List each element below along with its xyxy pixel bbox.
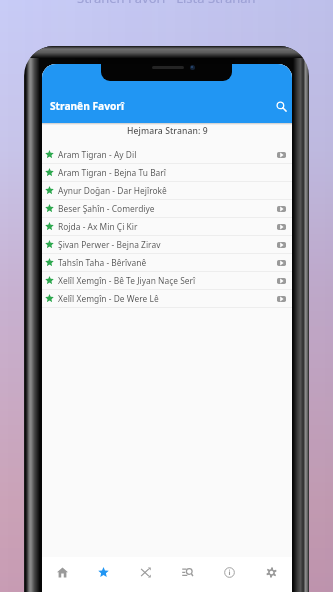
button[interactable]: Şivan Perwer - Bejna Zirav bbox=[42, 236, 292, 254]
staticText: Aynur Doğan - Dar Hejîrokê bbox=[58, 185, 167, 196]
staticText: Xelîl Xemgîn - De Were Lê bbox=[58, 293, 159, 304]
staticText: Şivan Perwer - Bejna Zirav bbox=[58, 239, 161, 250]
button[interactable]: Search list bbox=[166, 557, 208, 592]
button[interactable]: Xelîl Xemgîn - De Were Lê bbox=[42, 290, 292, 308]
button[interactable]: Shuffle bbox=[124, 557, 166, 592]
button[interactable]: Favorites bbox=[83, 557, 124, 592]
staticText: Hejmara Stranan: 9 bbox=[127, 125, 208, 137]
button[interactable]: Home bbox=[42, 557, 83, 592]
button[interactable]: Xelîl Xemgîn - Bê Te Jiyan Naçe Serî bbox=[42, 272, 292, 290]
staticText: Aram Tigran - Ay Dil bbox=[58, 149, 137, 160]
staticText: Rojda - Ax Min Çi Kir bbox=[58, 221, 138, 232]
button[interactable]: Settings bbox=[250, 557, 292, 592]
staticText: Xelîl Xemgîn - Bê Te Jiyan Naçe Serî bbox=[58, 275, 196, 286]
button[interactable]: Tahsîn Taha - Bêrîvanê bbox=[42, 254, 292, 272]
button[interactable]: Beser Şahîn - Comerdiye bbox=[42, 200, 292, 218]
staticText: Stranên Favorî - Lista Stranan bbox=[77, 0, 256, 7]
staticText: Tahsîn Taha - Bêrîvanê bbox=[58, 257, 147, 268]
button[interactable]: Info bbox=[208, 557, 250, 592]
button[interactable]: Aram Tigran - Ay Dil bbox=[42, 146, 292, 164]
button[interactable]: Aynur Doğan - Dar Hejîrokê bbox=[42, 182, 292, 200]
staticText: Aram Tigran - Bejna Tu Barî bbox=[58, 167, 167, 178]
staticText: Stranên Favorî bbox=[50, 99, 124, 113]
button[interactable]: Rojda - Ax Min Çi Kir bbox=[42, 218, 292, 236]
button[interactable]: Search bbox=[271, 96, 291, 116]
staticText: Beser Şahîn - Comerdiye bbox=[58, 203, 155, 214]
button[interactable]: Aram Tigran - Bejna Tu Barî bbox=[42, 164, 292, 182]
